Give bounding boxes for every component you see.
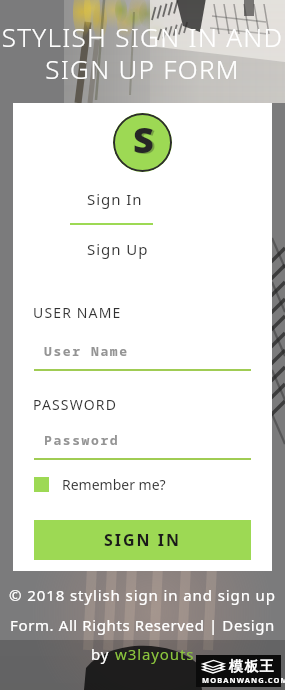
staticText: Sign Up bbox=[87, 239, 149, 259]
staticText: STYLISH SIGN IN AND SIGN UP FORM bbox=[0, 19, 285, 87]
staticText: S bbox=[133, 115, 154, 164]
staticText: PASSWORD bbox=[33, 395, 118, 414]
staticText: 模板王 bbox=[229, 658, 276, 676]
staticText: Sign In bbox=[87, 189, 143, 209]
staticText: USER NAME bbox=[33, 303, 122, 322]
button[interactable]: Sign Up bbox=[70, 236, 153, 262]
staticText: User Name bbox=[44, 342, 129, 360]
staticText: © 2018 stylish sign in and sign up bbox=[0, 585, 285, 605]
staticText: Remember me? bbox=[62, 475, 166, 494]
staticText: SIGN IN bbox=[104, 529, 182, 551]
button[interactable]: w3layouts bbox=[115, 644, 195, 664]
button[interactable]: Sign In bbox=[70, 186, 153, 225]
staticText: Password bbox=[44, 431, 120, 449]
button[interactable]: Remember me? bbox=[34, 475, 166, 494]
other: Mobanwang watermark bbox=[196, 655, 281, 687]
staticText: by bbox=[91, 644, 115, 664]
staticText: Form. All Rights Reserved | Design bbox=[0, 615, 285, 635]
staticText: S bbox=[135, 116, 156, 165]
staticText: MOBANWANG.COM bbox=[202, 675, 285, 685]
button[interactable]: SIGN IN bbox=[34, 520, 251, 560]
